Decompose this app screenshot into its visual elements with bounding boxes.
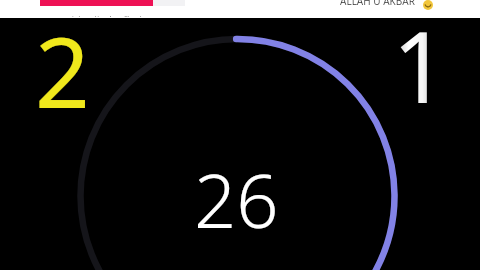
button[interactable]: ALLAH U AKBAR	[340, 0, 415, 8]
other: Emoji	[423, 0, 433, 10]
staticText: 2	[35, 5, 90, 136]
staticText: 26	[194, 149, 279, 250]
staticText: an interesting headline to read	[62, 14, 157, 17]
staticText: 1	[392, 0, 449, 131]
staticText: ALLAH U AKBAR	[340, 0, 415, 8]
button[interactable]: 26	[146, 144, 326, 254]
